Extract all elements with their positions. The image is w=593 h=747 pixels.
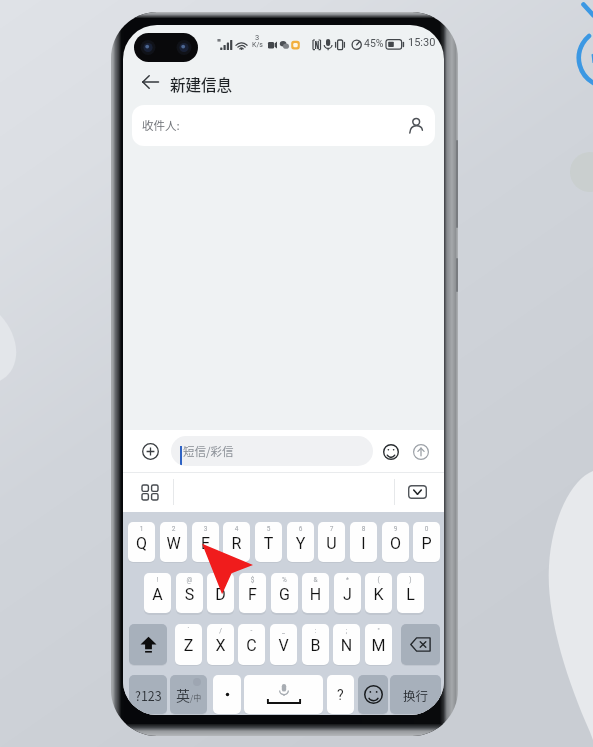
button[interactable]: ) <box>397 573 424 613</box>
staticText: ` <box>175 627 202 635</box>
button[interactable]: ( <box>365 573 392 613</box>
button[interactable]: Space <box>244 675 323 714</box>
button[interactable]: 短信/彩信 <box>171 436 373 466</box>
staticText: ! <box>144 576 171 584</box>
staticText: " <box>365 627 392 635</box>
staticText: V <box>270 636 297 655</box>
staticText: C <box>238 636 265 655</box>
button[interactable]: ` <box>175 624 202 665</box>
staticText: N <box>333 636 360 655</box>
staticText: F <box>239 585 266 604</box>
staticText: 45% <box>364 37 384 49</box>
staticText: $ <box>239 576 266 584</box>
button[interactable]: Switch input language <box>170 675 207 714</box>
staticText: _ <box>270 627 297 635</box>
button[interactable]: & <box>302 573 329 613</box>
staticText: 15:30 <box>408 36 436 49</box>
button[interactable]: 3 <box>192 522 219 562</box>
staticText: 9 <box>382 525 409 533</box>
button[interactable]: 换行 <box>390 675 441 714</box>
staticText: 收件人: <box>142 117 180 134</box>
staticText: 6 <box>287 525 314 533</box>
staticText: D <box>207 585 234 604</box>
button[interactable]: Backspace <box>401 624 440 665</box>
button[interactable]: Keyboard panel <box>133 477 167 507</box>
button[interactable]: Period <box>213 675 241 714</box>
staticText: 3 <box>255 33 260 42</box>
button[interactable]: 9 <box>382 522 409 562</box>
staticText: U <box>318 534 345 553</box>
staticText: ?123 <box>135 686 162 704</box>
staticText: S <box>176 585 203 604</box>
button[interactable]: " <box>365 624 392 665</box>
button[interactable]: * <box>334 573 361 613</box>
staticText: 换行 <box>403 686 429 704</box>
button[interactable]: 8 <box>350 522 377 562</box>
button[interactable]: # <box>207 573 234 613</box>
button[interactable]: 5 <box>255 522 282 562</box>
button[interactable]: Back <box>129 61 171 103</box>
staticText: K/s <box>252 41 263 49</box>
button[interactable]: % <box>271 573 298 613</box>
staticText: & <box>302 576 329 584</box>
button[interactable]: - <box>238 624 265 665</box>
staticText: 新建信息 <box>170 73 233 95</box>
button[interactable]: Hide keyboard <box>400 477 434 507</box>
button[interactable]: ?123 <box>129 675 167 714</box>
staticText: @ <box>176 576 203 584</box>
button[interactable]: 1 <box>128 522 155 562</box>
staticText: J <box>334 585 361 604</box>
staticText: E <box>192 534 219 553</box>
staticText: 英 <box>176 685 190 705</box>
staticText: Q <box>128 534 155 553</box>
staticText: T <box>255 534 282 553</box>
button[interactable]: : <box>302 624 329 665</box>
button[interactable]: _ <box>270 624 297 665</box>
button[interactable]: Emoji keyboard <box>358 675 388 714</box>
staticText: Z <box>175 636 202 655</box>
staticText: L <box>397 585 424 604</box>
button[interactable]: Send <box>407 438 434 465</box>
button[interactable]: 6 <box>287 522 314 562</box>
staticText: 7 <box>318 525 345 533</box>
button[interactable]: ! <box>144 573 171 613</box>
staticText: B <box>302 636 329 655</box>
button[interactable]: / <box>207 624 234 665</box>
button[interactable]: ; <box>333 624 360 665</box>
staticText: 短信/彩信 <box>183 443 234 460</box>
staticText: 1 <box>128 525 155 533</box>
staticText: ? <box>337 687 344 703</box>
staticText: G <box>271 585 298 604</box>
button[interactable]: 7 <box>318 522 345 562</box>
staticText: ; <box>333 627 360 635</box>
button[interactable]: 0 <box>413 522 440 562</box>
button[interactable]: 2 <box>160 522 187 562</box>
staticText: 0 <box>413 525 440 533</box>
staticText: /中 <box>190 692 202 704</box>
staticText: # <box>207 576 234 584</box>
button[interactable]: ? <box>327 675 354 714</box>
staticText: O <box>382 534 409 553</box>
staticText: Y <box>287 534 314 553</box>
staticText: K <box>365 585 392 604</box>
staticText: A <box>144 585 171 604</box>
staticText: % <box>271 576 298 584</box>
button[interactable]: 4 <box>223 522 250 562</box>
button[interactable]: $ <box>239 573 266 613</box>
staticText: 8 <box>350 525 377 533</box>
staticText: M <box>365 636 392 655</box>
staticText: 2 <box>160 525 187 533</box>
button[interactable]: Choose contact <box>397 105 435 146</box>
staticText: ) <box>397 576 424 584</box>
button[interactable]: @ <box>176 573 203 613</box>
staticText: P <box>413 534 440 553</box>
button[interactable]: 收件人: <box>132 105 435 146</box>
staticText: 3 <box>192 525 219 533</box>
button[interactable]: Shift <box>129 624 167 665</box>
staticText: I <box>350 534 377 553</box>
staticText: 4 <box>223 525 250 533</box>
button[interactable]: Emoji <box>377 438 404 465</box>
staticText: H <box>302 585 329 604</box>
staticText: R <box>223 534 250 553</box>
button[interactable]: Add attachment <box>136 437 164 465</box>
